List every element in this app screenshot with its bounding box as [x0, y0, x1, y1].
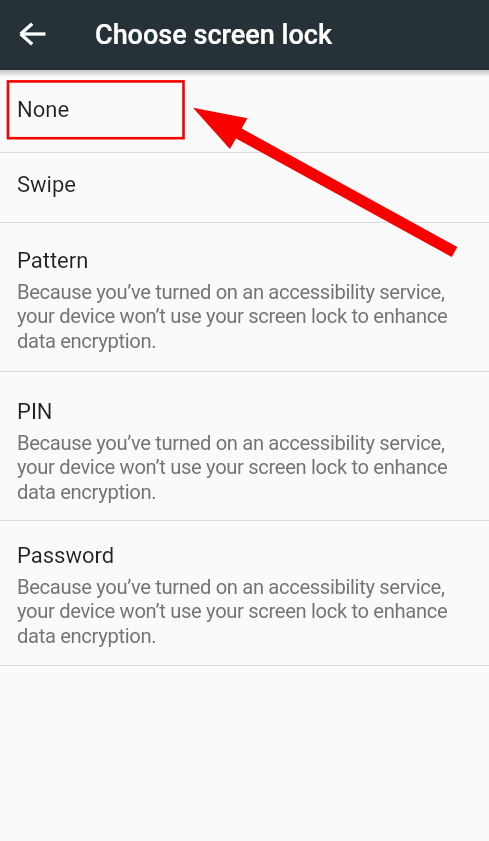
button[interactable]: PIN	[0, 372, 489, 520]
staticText: Swipe	[17, 172, 76, 198]
staticText: Pattern	[17, 248, 89, 274]
button[interactable]: Password	[0, 521, 489, 665]
button[interactable]: Pattern	[0, 223, 489, 371]
staticText: None	[17, 97, 70, 123]
button[interactable]	[0, 0, 56, 70]
staticText: Password	[17, 543, 115, 569]
staticText: Because you’ve turned on an accessibilit…	[17, 280, 448, 353]
button[interactable]: Swipe	[0, 153, 489, 222]
staticText: Choose screen lock	[95, 19, 333, 51]
staticText: Because you’ve turned on an accessibilit…	[17, 575, 448, 648]
staticText: PIN	[17, 399, 53, 425]
button[interactable]: None	[0, 70, 489, 152]
staticText: Because you’ve turned on an accessibilit…	[17, 431, 448, 504]
